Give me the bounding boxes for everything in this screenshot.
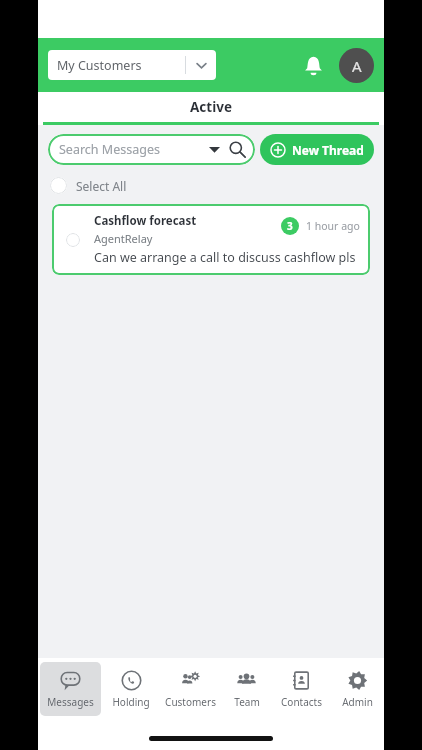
staticText: Holding	[112, 695, 150, 709]
button[interactable]: Messages	[40, 662, 101, 716]
staticText: Cashflow forecast	[94, 213, 197, 229]
staticText: Select All	[76, 178, 127, 194]
staticText: Team	[234, 695, 260, 709]
staticText: AgentRelay	[94, 231, 153, 246]
button[interactable]: My Customers	[48, 50, 216, 80]
button[interactable]: Holding	[105, 662, 157, 716]
button[interactable]: Select All	[50, 177, 127, 194]
staticText: Admin	[342, 695, 373, 709]
button[interactable]: Active	[38, 92, 384, 125]
button[interactable]: Search Messages	[48, 134, 255, 165]
button[interactable]: Cashflow forecast	[52, 204, 370, 275]
staticText: Search Messages	[59, 141, 160, 158]
staticText: My Customers	[57, 57, 142, 74]
button[interactable]: Notifications	[293, 45, 333, 85]
button[interactable]: Customers	[161, 662, 219, 716]
staticText: A	[352, 56, 362, 76]
staticText: Contacts	[281, 695, 322, 709]
staticText: Can we arrange a call to discuss cashflo…	[94, 249, 356, 266]
staticText: 3	[287, 219, 293, 233]
staticText: Customers	[165, 695, 216, 709]
button[interactable]: Team	[223, 662, 270, 716]
button[interactable]: A	[339, 48, 374, 83]
staticText: 1 hour ago	[306, 219, 360, 233]
staticText: Active	[190, 98, 232, 116]
button[interactable]: Contacts	[274, 662, 329, 716]
button[interactable]: New Thread	[260, 134, 374, 165]
staticText: Messages	[47, 695, 94, 709]
staticText: New Thread	[292, 142, 364, 158]
button[interactable]: Admin	[333, 662, 382, 716]
